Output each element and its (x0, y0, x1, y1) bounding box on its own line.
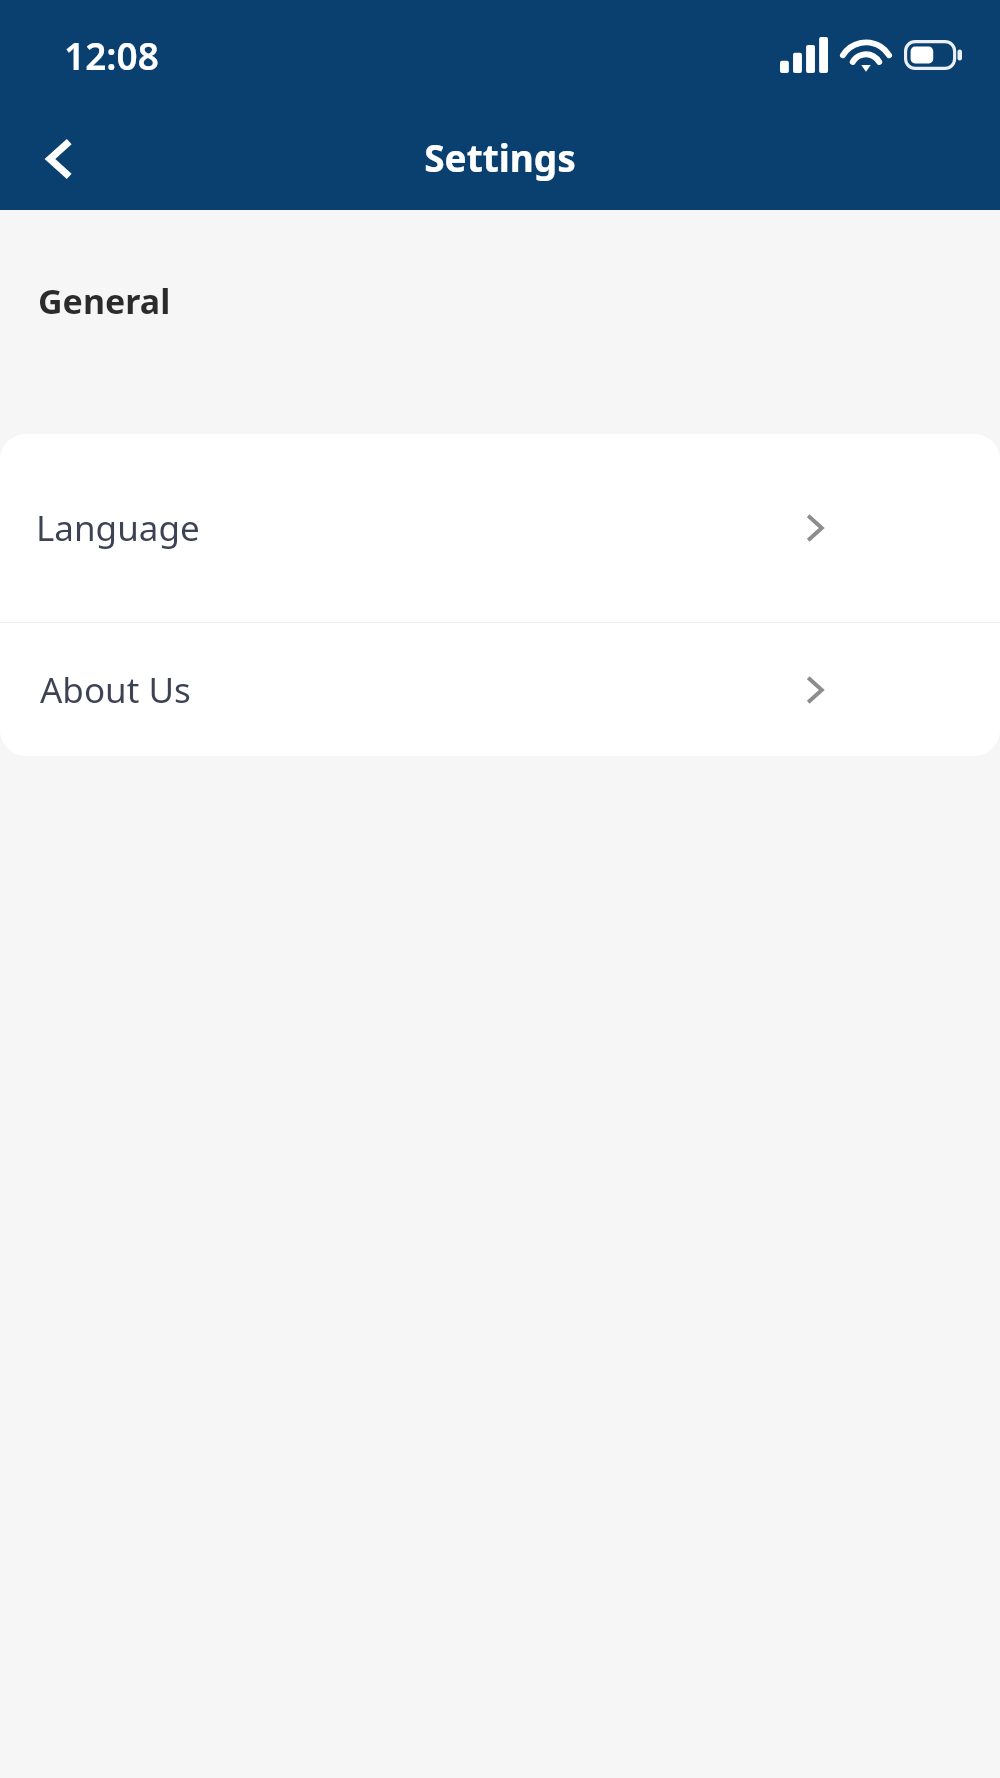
staticText: General (38, 278, 171, 324)
staticText: About Us (40, 666, 191, 714)
staticText: 12:08 (64, 30, 159, 80)
staticText: Language (36, 504, 200, 552)
staticText: Settings (424, 132, 576, 182)
button[interactable]: Language (0, 434, 1000, 622)
button[interactable]: Back (22, 121, 98, 197)
button[interactable]: About Us (0, 623, 1000, 756)
